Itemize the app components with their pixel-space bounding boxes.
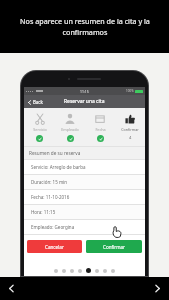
button[interactable] xyxy=(86,268,91,273)
button[interactable] xyxy=(62,269,66,273)
staticText: Confirmar xyxy=(121,127,139,132)
staticText: Reservar una cita xyxy=(64,98,105,105)
button[interactable]: Servicio xyxy=(24,108,55,147)
staticText: Empleado xyxy=(61,127,79,132)
staticText: Resumen de su reserva xyxy=(29,150,81,156)
staticText: Cancelar xyxy=(45,244,64,250)
button[interactable]: Fecha: 11-10-2016 xyxy=(24,190,145,204)
button[interactable] xyxy=(103,269,107,273)
button[interactable]: Previous slide xyxy=(0,277,23,300)
button[interactable]: Duración: 15 min xyxy=(24,175,145,189)
button[interactable] xyxy=(70,269,74,273)
button[interactable] xyxy=(111,269,115,273)
staticText: 100% xyxy=(126,89,134,93)
staticText: Fecha xyxy=(95,127,106,132)
staticText: Fecha: 11-10-2016 xyxy=(31,194,70,200)
button[interactable]: Cancelar xyxy=(27,240,82,253)
staticText: Empleado: Georgina xyxy=(31,224,75,230)
staticText: Servicio xyxy=(33,127,47,132)
staticText: Nos aparece un resumen de la cita y la c… xyxy=(20,16,150,37)
button[interactable]: Back xyxy=(24,97,46,107)
button[interactable]: Servicio: Arreglo de barba xyxy=(24,160,145,174)
staticText: 4 xyxy=(129,135,132,141)
staticText: Duración: 15 min xyxy=(31,179,68,185)
staticText: Servicio: Arreglo de barba xyxy=(31,164,86,170)
button[interactable]: Next slide xyxy=(146,277,169,300)
staticText: Hora: 11:15 xyxy=(31,209,56,215)
button[interactable] xyxy=(54,269,58,273)
staticText: 11:15 xyxy=(80,89,89,94)
staticText: Confirmar xyxy=(103,244,125,250)
button[interactable] xyxy=(78,269,82,273)
button[interactable]: Confirmar xyxy=(86,240,142,253)
button[interactable]: Empleado xyxy=(55,108,85,147)
button[interactable]: Empleado: Georgina xyxy=(24,220,145,234)
button[interactable]: Fecha xyxy=(85,108,115,147)
staticText: Back xyxy=(33,99,43,105)
button[interactable]: Confirmar xyxy=(115,108,145,147)
button[interactable]: Hora: 11:15 xyxy=(24,205,145,219)
button[interactable] xyxy=(95,269,99,273)
